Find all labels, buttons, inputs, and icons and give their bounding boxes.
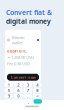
staticText: 3 bbox=[27, 82, 29, 88]
staticText: , bbox=[28, 99, 29, 104]
button[interactable]: 2 bbox=[14, 83, 22, 87]
staticText: 4 bbox=[36, 82, 38, 88]
button[interactable]: 7 bbox=[23, 88, 32, 93]
button[interactable]: < bbox=[33, 94, 41, 98]
button[interactable]: Return bbox=[33, 99, 42, 104]
staticText: digital money bbox=[6, 17, 51, 26]
staticText: Convert now bbox=[10, 75, 35, 80]
staticText: 1 bbox=[8, 82, 10, 88]
staticText: 7 bbox=[27, 88, 29, 93]
staticText: 5 bbox=[8, 88, 10, 93]
button[interactable]: 3 bbox=[23, 83, 32, 87]
staticText: ≈ 1,204.00 USD bbox=[7, 55, 34, 60]
staticText: 9 bbox=[8, 93, 10, 99]
button[interactable]: , bbox=[24, 99, 32, 104]
staticText: Bitcoin wallet bbox=[12, 35, 24, 45]
button[interactable]: . bbox=[23, 94, 32, 98]
staticText: 8 bbox=[36, 88, 38, 93]
button[interactable]: 9 bbox=[4, 94, 13, 98]
button[interactable]: 8 bbox=[33, 88, 41, 93]
button[interactable]: 4 bbox=[33, 83, 41, 87]
staticText: 6 bbox=[17, 88, 19, 93]
staticText: 0 bbox=[17, 93, 19, 99]
staticText: < bbox=[36, 93, 38, 99]
staticText: Convert fiat & bbox=[6, 8, 52, 17]
button[interactable]: 0 bbox=[14, 94, 22, 98]
staticText: 0.0241 BTC bbox=[7, 48, 27, 54]
button[interactable]: 1 bbox=[4, 83, 13, 87]
button[interactable]: 5 bbox=[4, 88, 13, 93]
staticText: Fee 0.30 USD bbox=[7, 61, 30, 66]
button[interactable]: 6 bbox=[14, 88, 22, 93]
button[interactable]: Convert now bbox=[7, 74, 39, 81]
staticText: . bbox=[27, 93, 28, 99]
staticText: 2 bbox=[17, 82, 19, 88]
